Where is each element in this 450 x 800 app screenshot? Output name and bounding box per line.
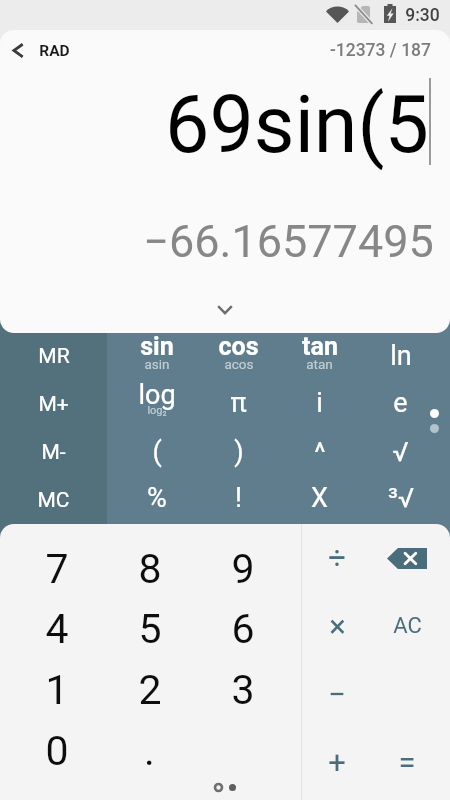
- staticText: 0: [45, 727, 69, 775]
- staticText: 8: [138, 545, 162, 593]
- staticText: ^: [314, 437, 326, 469]
- button[interactable]: .: [103, 720, 196, 781]
- button[interactable]: 9: [196, 539, 289, 599]
- button[interactable]: π: [198, 380, 279, 428]
- button[interactable]: ): [198, 428, 279, 476]
- button[interactable]: ³√: [360, 476, 441, 524]
- button[interactable]: √: [360, 428, 441, 476]
- other: Wi-Fi: [326, 5, 349, 23]
- button[interactable]: (: [116, 428, 198, 476]
- button[interactable]: Backspace: [372, 524, 442, 592]
- button[interactable]: +: [302, 728, 372, 796]
- staticText: M+: [38, 392, 69, 417]
- staticText: X: [311, 482, 328, 514]
- staticText: 4: [45, 605, 69, 653]
- button[interactable]: M-: [0, 428, 107, 476]
- staticText: MC: [37, 488, 70, 513]
- staticText: 6: [231, 605, 255, 653]
- button[interactable]: 7: [11, 539, 103, 599]
- staticText: RAD: [39, 42, 70, 60]
- staticText: !: [235, 482, 242, 514]
- staticText: 2: [138, 666, 162, 714]
- button[interactable]: =: [372, 728, 442, 796]
- button[interactable]: ln: [360, 333, 441, 380]
- staticText: sin: [140, 332, 174, 361]
- button[interactable]: !: [198, 476, 279, 524]
- staticText: M-: [41, 440, 66, 465]
- button[interactable]: 0: [11, 720, 103, 781]
- staticText: ÷: [328, 540, 346, 576]
- staticText: √: [392, 436, 409, 468]
- button[interactable]: tan: [279, 333, 360, 380]
- staticText: tan: [302, 332, 338, 361]
- staticText: log₂: [147, 404, 167, 417]
- button[interactable]: M+: [0, 380, 107, 428]
- staticText: (: [152, 436, 162, 468]
- staticText: −66.16577495: [143, 215, 434, 268]
- staticText: .: [144, 727, 155, 775]
- staticText: ): [234, 436, 244, 468]
- staticText: %: [147, 482, 167, 514]
- button[interactable]: 2: [103, 659, 196, 720]
- button[interactable]: AC: [372, 592, 442, 660]
- button[interactable]: ^: [279, 428, 360, 476]
- staticText: MR: [38, 344, 70, 369]
- staticText: +: [328, 744, 346, 780]
- staticText: 69sin(5: [165, 79, 429, 172]
- button[interactable]: cos: [198, 333, 279, 380]
- button[interactable]: 4: [11, 599, 103, 659]
- button[interactable]: i: [279, 380, 360, 428]
- staticText: ×: [329, 608, 346, 644]
- button[interactable]: MR: [0, 333, 107, 380]
- button[interactable]: %: [116, 476, 198, 524]
- staticText: 7: [45, 545, 69, 593]
- staticText: i: [316, 387, 323, 419]
- staticText: 3: [231, 666, 255, 714]
- staticText: ln: [390, 340, 412, 372]
- button[interactable]: X: [279, 476, 360, 524]
- button[interactable]: MC: [0, 476, 107, 524]
- staticText: 5: [138, 605, 162, 653]
- staticText: log: [138, 379, 176, 411]
- button[interactable]: 8: [103, 539, 196, 599]
- button[interactable]: sin: [116, 333, 198, 380]
- button[interactable]: −: [302, 660, 372, 728]
- staticText: AC: [393, 613, 422, 639]
- button[interactable]: 1: [11, 659, 103, 720]
- button[interactable]: ÷: [302, 524, 372, 592]
- staticText: π: [230, 387, 247, 419]
- staticText: 9:30: [405, 5, 440, 26]
- other: Battery charging: [384, 4, 396, 23]
- button[interactable]: log: [116, 380, 198, 428]
- staticText: ³√: [388, 482, 414, 514]
- button[interactable]: 3: [196, 659, 289, 720]
- button[interactable]: -12373 / 187: [310, 30, 450, 71]
- button[interactable]: 6: [196, 599, 289, 659]
- other: No SIM card: [357, 6, 370, 23]
- button[interactable]: 5: [103, 599, 196, 659]
- staticText: -12373 / 187: [330, 40, 431, 61]
- staticText: =: [398, 744, 416, 780]
- button[interactable]: e: [360, 380, 441, 428]
- staticText: 9: [231, 545, 255, 593]
- button[interactable]: RAD: [0, 30, 81, 71]
- staticText: −: [328, 676, 346, 712]
- button[interactable]: Show history: [203, 288, 247, 332]
- button[interactable]: ×: [302, 592, 372, 660]
- staticText: e: [393, 387, 408, 419]
- staticText: asin: [144, 356, 170, 372]
- staticText: atan: [306, 356, 333, 372]
- staticText: 1: [45, 666, 69, 714]
- staticText: acos: [224, 356, 254, 372]
- staticText: cos: [218, 332, 259, 361]
